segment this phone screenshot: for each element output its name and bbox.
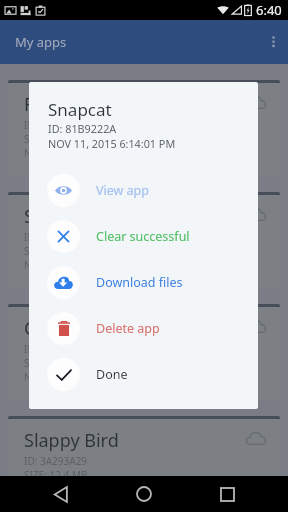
staticText: Clear successful <box>96 228 190 245</box>
button[interactable]: Download files <box>29 259 258 305</box>
staticText: NOV 11, 2015 <box>24 258 88 272</box>
staticText: 6:40 <box>256 1 282 19</box>
staticText: My apps <box>15 33 67 51</box>
staticText: ID: 9F2A88C1 <box>24 342 87 356</box>
button[interactable]: View app <box>29 167 258 213</box>
staticText: NOV 11, 2015 6:14:01 PM <box>48 136 176 151</box>
staticText: Download files <box>96 274 183 291</box>
button[interactable]: Snapcat <box>8 192 280 288</box>
staticText: SIZE: 12.4 MB <box>24 244 88 258</box>
staticText: Delete app <box>96 320 160 337</box>
staticText: ID: 81B9222A <box>24 230 88 244</box>
staticText: ID: 3A293A29 <box>24 454 88 468</box>
staticText: SIZE: 12.4 MB <box>24 356 88 370</box>
staticText: Fruit Ninja <box>24 92 112 117</box>
staticText: ID: 8B2F991C <box>24 118 87 132</box>
button[interactable]: Home <box>122 476 166 512</box>
button[interactable]: Fruit Ninja <box>8 80 280 176</box>
staticText: Snapcat <box>24 204 92 229</box>
staticText: NOV 11, 2015 <box>24 370 88 384</box>
staticText: SIZE: 12.4 MB <box>24 132 88 146</box>
button[interactable]: Back <box>39 476 83 512</box>
button[interactable]: More options <box>258 20 288 64</box>
staticText: NOV 11, 2015 <box>24 146 88 160</box>
staticText: Candy Crush <box>24 316 132 341</box>
staticText: SIZE: 12.4 MB <box>24 468 88 482</box>
staticText: Snapcat <box>48 98 112 121</box>
button[interactable]: Recent apps <box>205 476 249 512</box>
staticText: ID: 81B9222A <box>48 121 117 136</box>
button[interactable]: Slappy Bird <box>8 416 280 512</box>
button[interactable]: Delete app <box>29 305 258 351</box>
staticText: Done <box>96 366 128 383</box>
staticText: View app <box>96 182 149 199</box>
button[interactable]: Done <box>29 351 258 397</box>
button[interactable]: Clear successful <box>29 213 258 259</box>
button[interactable]: Candy Crush <box>8 304 280 400</box>
staticText: NOV 11, 2015 <box>24 482 88 496</box>
staticText: Slappy Bird <box>24 428 119 453</box>
